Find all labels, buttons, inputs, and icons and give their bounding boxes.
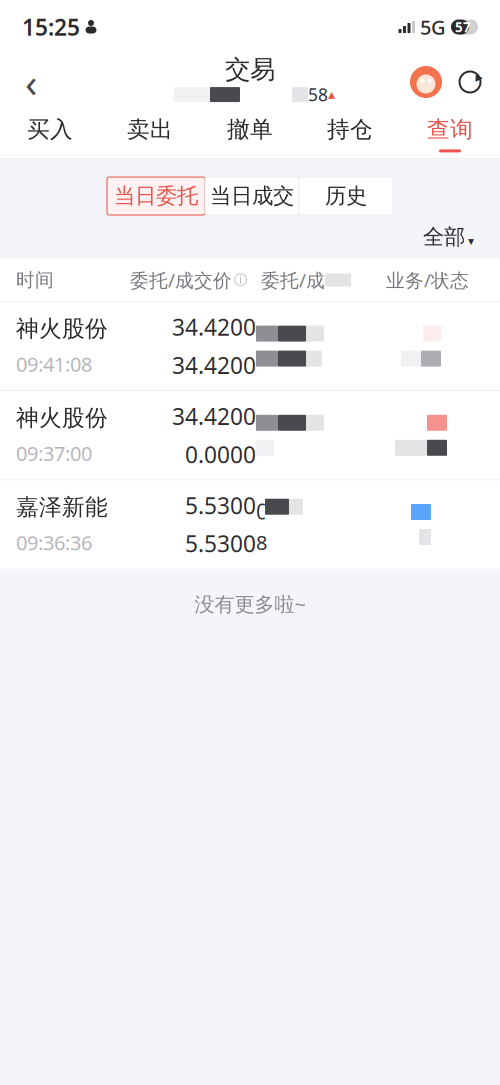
staticText: 34.4200 (172, 312, 256, 342)
staticText: 全部 (423, 224, 465, 250)
staticText: 神火股份 (16, 404, 108, 432)
button[interactable]: 撤单 (200, 110, 300, 158)
button[interactable]: 历史 (299, 177, 393, 215)
staticText: 34.4200 (172, 350, 256, 380)
staticText: 09:36:36 (16, 529, 92, 556)
staticText: 卖出 (127, 116, 173, 143)
staticText: ▲ (328, 89, 335, 100)
staticText: 嘉泽新能 (16, 493, 108, 521)
staticText: 15:25 (22, 12, 80, 42)
staticText: 委托/成交价 (130, 268, 232, 292)
button[interactable]: 账户头像 (404, 58, 448, 106)
staticText: 撤单 (227, 116, 273, 143)
staticText: 委托/成 (261, 268, 325, 292)
button[interactable]: 返回 (8, 58, 54, 106)
staticText: 查询 (427, 116, 473, 143)
button[interactable]: 查询 (400, 110, 500, 158)
staticText: 58 (308, 83, 328, 106)
staticText: 34.4200 (172, 401, 256, 431)
staticText: 当日成交 (210, 183, 294, 209)
staticText: ▸ (475, 69, 482, 85)
staticText: 8 (256, 529, 267, 556)
button[interactable]: 当日成交 (205, 177, 299, 215)
staticText: ⓘ (234, 272, 247, 288)
button[interactable]: 全部 (415, 218, 482, 256)
staticText: 业务/状态 (386, 268, 469, 292)
staticText: 交易 (225, 54, 275, 85)
staticText: 神火股份 (16, 315, 108, 343)
staticText: 09:41:08 (16, 351, 92, 377)
staticText: 持仓 (327, 116, 373, 143)
staticText: ʗ (256, 493, 265, 520)
staticText: 0.0000 (185, 439, 256, 469)
button[interactable]: 持仓 (300, 110, 400, 158)
staticText: 5G (420, 14, 446, 40)
staticText: 时间 (16, 268, 54, 291)
staticText: ‹ (25, 55, 37, 108)
button[interactable]: 买入 (0, 110, 100, 158)
staticText: 当日委托 (114, 183, 198, 209)
staticText: 买入 (27, 116, 73, 143)
staticText: ▾ (468, 234, 474, 248)
button[interactable]: 当日委托 (107, 177, 205, 215)
staticText: 5.5300 (185, 528, 256, 559)
staticText: 历史 (325, 183, 367, 209)
button[interactable]: 卖出 (100, 110, 200, 158)
staticText: 09:37:00 (16, 440, 92, 466)
staticText: 57 (455, 18, 471, 36)
staticText: 5.5300 (185, 490, 256, 520)
button[interactable]: 刷新 (448, 58, 492, 106)
staticText: 没有更多啦~ (194, 591, 305, 617)
